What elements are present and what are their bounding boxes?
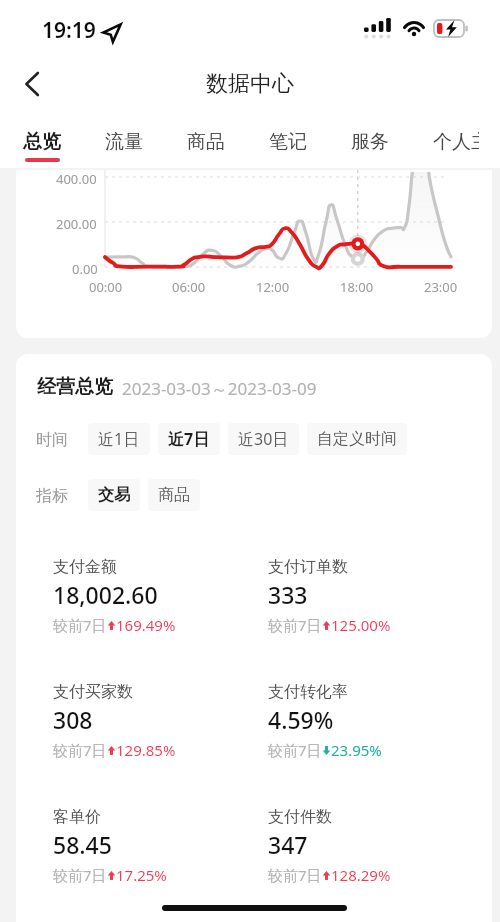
staticText: 总览 — [23, 130, 61, 154]
staticText: 较前7日 — [268, 740, 322, 760]
staticText: 近30日 — [238, 428, 289, 450]
staticText: 18:00 — [340, 278, 374, 296]
button[interactable]: 自定义时间 — [307, 423, 407, 455]
staticText: 2023-03-03～2023-03-09 — [122, 377, 317, 400]
staticText: 19:19 — [42, 16, 96, 45]
staticText: 较前7日 — [53, 615, 107, 635]
staticText: 333 — [268, 579, 308, 610]
button[interactable]: 近7日 — [158, 423, 220, 455]
staticText: 流量 — [105, 130, 143, 154]
staticText: 4.59% — [268, 704, 334, 735]
staticText: 0.00 — [72, 260, 98, 278]
button[interactable]: 近1日 — [88, 423, 150, 455]
staticText: 个人主页 — [433, 130, 479, 154]
staticText: 308 — [53, 704, 93, 735]
staticText: 较前7日 — [53, 740, 107, 760]
staticText: 00:00 — [89, 278, 123, 296]
staticText: 17.25% — [116, 865, 167, 885]
button[interactable]: 服务 — [351, 130, 389, 162]
staticText: 近7日 — [168, 428, 210, 450]
staticText: 时间 — [36, 430, 68, 450]
staticText: 服务 — [351, 130, 389, 154]
button[interactable]: 笔记 — [269, 130, 307, 162]
staticText: 12:00 — [256, 278, 290, 296]
staticText: 125.00% — [331, 615, 391, 635]
staticText: 23:00 — [424, 278, 458, 296]
staticText: 支付买家数 — [53, 682, 133, 702]
staticText: 347 — [268, 829, 308, 860]
button[interactable]: 流量 — [105, 130, 143, 162]
staticText: 400.00 — [56, 170, 97, 188]
button[interactable]: Back — [6, 58, 58, 110]
staticText: 58.45 — [53, 829, 112, 860]
staticText: 129.85% — [116, 740, 176, 760]
staticText: 支付订单数 — [268, 557, 348, 577]
staticText: 近1日 — [98, 428, 140, 450]
button[interactable]: 商品 — [187, 130, 225, 162]
staticText: 交易 — [98, 485, 130, 505]
staticText: 较前7日 — [268, 615, 322, 635]
staticText: 商品 — [158, 485, 190, 505]
button[interactable]: 商品 — [148, 479, 200, 511]
staticText: 支付金额 — [53, 557, 117, 577]
button[interactable]: 近30日 — [228, 423, 299, 455]
staticText: 商品 — [187, 130, 225, 154]
staticText: 支付件数 — [268, 807, 332, 827]
staticText: 200.00 — [56, 215, 97, 233]
staticText: 23.95% — [331, 740, 382, 760]
staticText: 客单价 — [53, 807, 101, 827]
staticText: 支付转化率 — [268, 682, 348, 702]
staticText: 18,002.60 — [53, 579, 158, 610]
staticText: 128.29% — [331, 865, 391, 885]
staticText: 笔记 — [269, 130, 307, 154]
staticText: 较前7日 — [53, 865, 107, 885]
staticText: 较前7日 — [268, 865, 322, 885]
button[interactable]: 个人主页 — [433, 130, 479, 162]
staticText: 指标 — [36, 486, 68, 506]
staticText: 经营总览 — [37, 375, 113, 399]
button[interactable]: 总览 — [23, 130, 61, 162]
staticText: 数据中心 — [206, 70, 294, 98]
button[interactable]: 交易 — [88, 479, 140, 511]
staticText: 自定义时间 — [317, 429, 397, 449]
staticText: 06:00 — [172, 278, 206, 296]
staticText: 169.49% — [116, 615, 176, 635]
